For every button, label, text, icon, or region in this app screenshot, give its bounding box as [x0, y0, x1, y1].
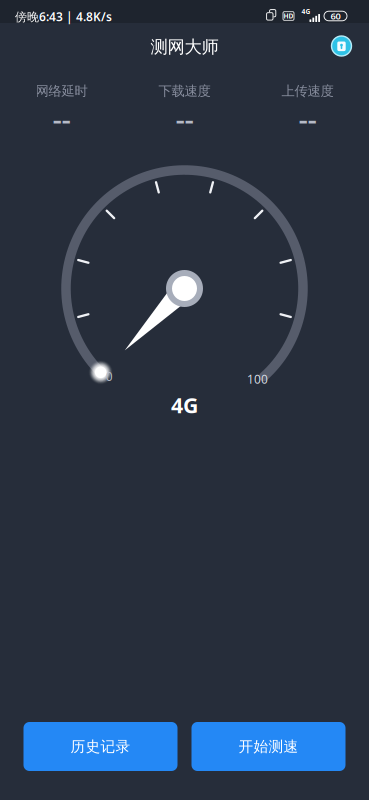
staticText: 下载速度 — [158, 83, 210, 99]
button[interactable]: 历史记录 — [23, 722, 177, 771]
staticText: 开始测速 — [238, 737, 298, 755]
staticText: -- — [52, 98, 70, 137]
staticText: 4G — [301, 7, 310, 16]
staticText: 4G — [171, 391, 198, 419]
staticText: 测网大师 — [150, 36, 218, 58]
staticText: 历史记录 — [70, 737, 130, 755]
staticText: -- — [298, 98, 316, 137]
staticText: 傍晚6:43 | 4.8K/s — [15, 8, 112, 24]
staticText: 60 — [330, 10, 340, 22]
staticText: 上传速度 — [281, 83, 333, 99]
staticText: 0 — [106, 368, 113, 384]
staticText: -- — [175, 98, 193, 137]
staticText: 网络延时 — [35, 83, 87, 99]
button[interactable]: 开始测速 — [191, 722, 345, 771]
staticText: 100 — [247, 371, 268, 387]
button[interactable]: 安全防护 — [0, 0, 36, 36]
staticText: HD — [283, 12, 293, 20]
